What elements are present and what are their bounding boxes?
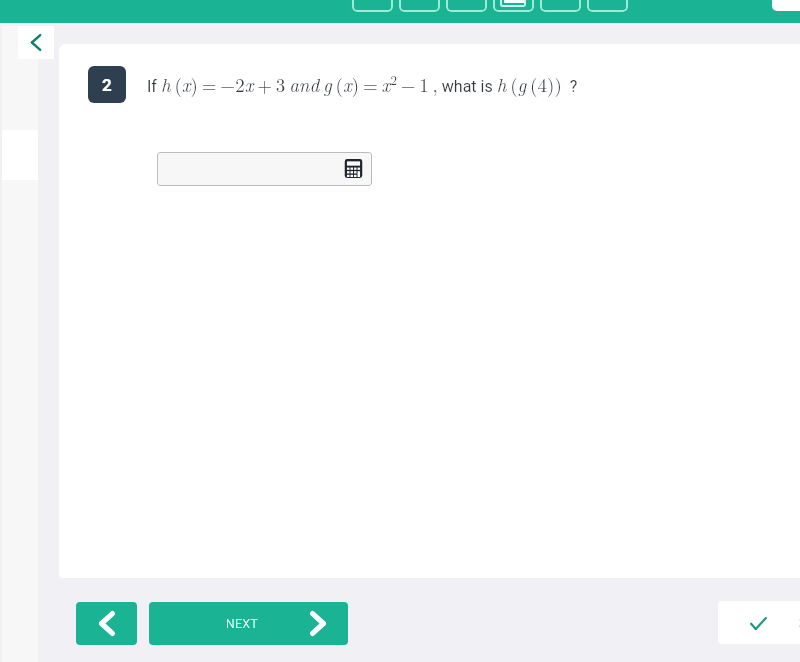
button[interactable]: Question 5 xyxy=(540,0,581,12)
button[interactable]: Menu xyxy=(772,0,800,11)
button[interactable]: Answer xyxy=(157,152,372,186)
button[interactable]: Calculator xyxy=(344,159,363,178)
button[interactable]: Question 4 xyxy=(493,0,534,12)
button[interactable]: Previous xyxy=(76,602,137,645)
button[interactable]: Back xyxy=(18,26,54,59)
button[interactable]: NEXT xyxy=(149,602,348,645)
button[interactable]: Question 6 xyxy=(587,0,628,12)
button[interactable]: Mark complete xyxy=(718,601,800,644)
staticText: NEXT xyxy=(226,617,259,631)
staticText: If h (x) = −2x + 3 and g (x) = x2 − 1 , … xyxy=(147,70,578,98)
button[interactable]: Question 2 xyxy=(399,0,440,12)
button[interactable]: Question 1 xyxy=(352,0,393,12)
staticText: 2 xyxy=(102,75,112,95)
button[interactable]: Question 3 xyxy=(446,0,487,12)
staticText: 3 xyxy=(799,613,800,633)
